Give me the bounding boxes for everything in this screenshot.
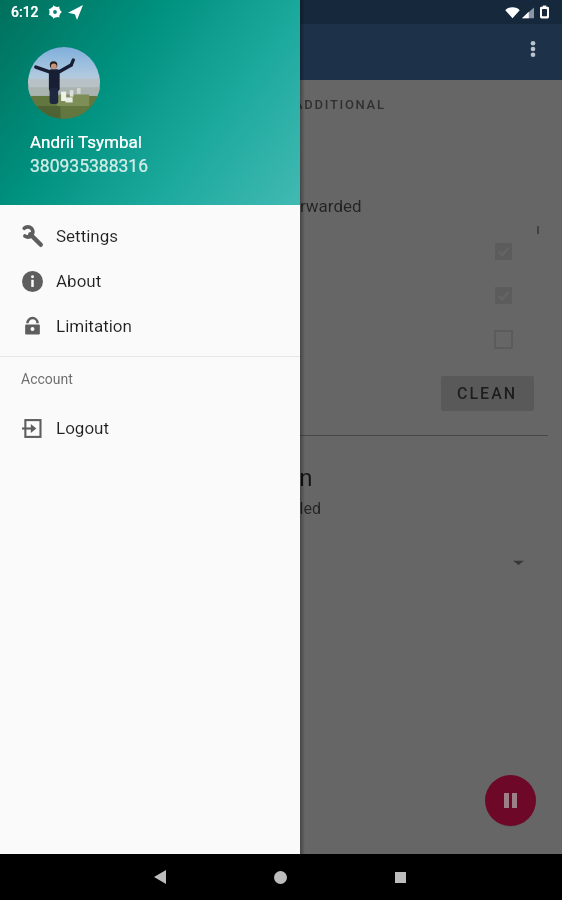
button[interactable]: Pause [485,775,536,826]
staticText: 380935388316 [30,156,149,177]
button[interactable]: Logout [0,405,300,450]
button[interactable]: Settings [0,213,300,258]
staticText: Account [21,371,73,387]
staticText: Forwarded [281,196,362,216]
button[interactable]: CLEAN [441,376,534,411]
button[interactable]: Back [140,857,180,897]
staticText: 6:12 [11,4,39,20]
staticText: CLEAN [457,384,518,403]
staticText: ADDITIONAL [294,97,386,112]
staticText: Limitation [56,316,132,336]
button[interactable]: More options [513,29,553,69]
staticText: Session [228,464,313,492]
staticText: Logout [56,418,110,438]
button[interactable]: Home [260,857,300,897]
button[interactable]: Limitation [0,303,300,348]
staticText: Settings [56,226,119,246]
staticText: Andrii Tsymbal [30,132,142,152]
button[interactable]: About [0,258,300,303]
staticText: About [56,271,102,291]
staticText: Enabled [264,499,322,518]
button[interactable]: Recents [380,857,420,897]
